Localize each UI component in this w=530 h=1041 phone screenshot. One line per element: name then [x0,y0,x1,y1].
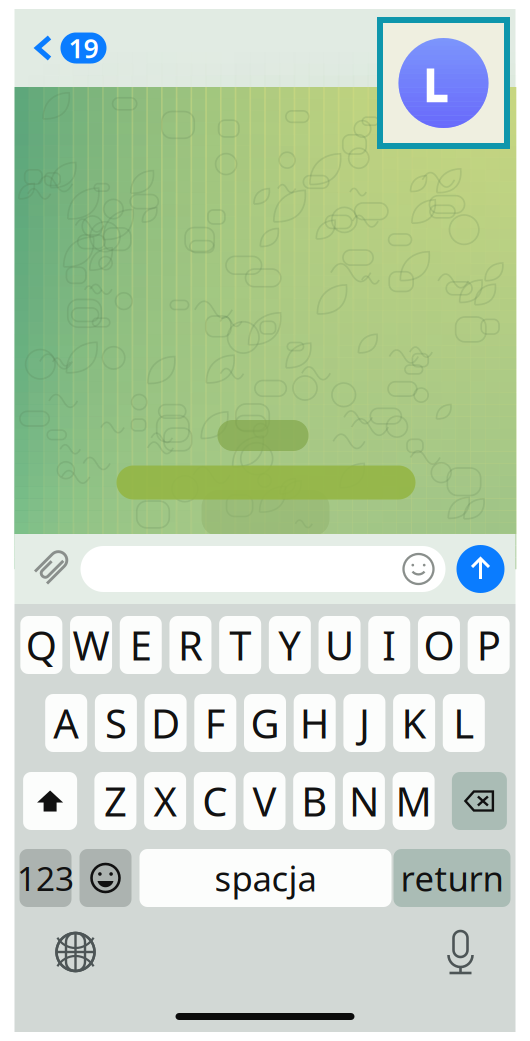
staticText: W [72,618,109,671]
button[interactable]: Z [94,772,136,830]
button[interactable]: L [443,694,485,752]
button[interactable]: D [145,694,187,752]
button[interactable]: C [194,772,236,830]
button[interactable]: T [219,616,261,674]
staticText: return [400,855,503,901]
button[interactable]: A [45,694,87,752]
button[interactable]: U [318,616,360,674]
staticText: A [53,696,79,749]
button[interactable]: X [144,772,186,830]
button[interactable]: J [343,694,385,752]
button[interactable]: Emoji [403,554,445,584]
staticText: C [202,774,227,827]
staticText: I [382,618,396,671]
button[interactable]: Backspace [452,772,507,830]
staticText: V [252,774,276,827]
staticText: J [359,696,370,749]
button[interactable]: H [294,694,336,752]
button[interactable]: Dictation [433,925,515,979]
button[interactable]: 123 [19,849,71,907]
staticText: K [402,696,427,749]
button[interactable]: K [393,694,435,752]
button[interactable]: spacja [139,849,391,907]
button[interactable]: Next keyboard [14,925,106,979]
button[interactable]: Y [269,616,311,674]
button[interactable]: Send [445,545,515,593]
staticText: N [349,774,379,827]
button[interactable]: Shift [23,772,77,830]
staticText: U [325,618,354,671]
staticText: T [229,618,251,671]
staticText: S [105,696,127,749]
staticText: B [301,774,327,827]
button[interactable]: B [293,772,335,830]
button[interactable]: S [95,694,137,752]
button[interactable]: Attach [14,534,80,604]
staticText: G [250,696,279,749]
staticText: Z [104,774,127,827]
button[interactable]: M [393,772,435,830]
button[interactable]: return [393,849,510,907]
staticText: D [151,696,180,749]
button[interactable]: Emoji [79,849,131,907]
button[interactable]: N [343,772,385,830]
staticText: R [178,618,203,671]
staticText: X [154,774,177,827]
staticText: spacja [214,855,316,901]
staticText: 19 [68,30,98,66]
staticText: H [300,696,330,749]
button[interactable]: Q [20,616,62,674]
button[interactable]: O [418,616,460,674]
staticText: Q [26,618,57,671]
button[interactable]: R [169,616,211,674]
staticText: Y [278,618,301,671]
button[interactable]: E [120,616,162,674]
staticText: E [130,618,152,671]
staticText: 123 [17,856,74,900]
button[interactable]: 19 [14,9,118,87]
button[interactable]: P [468,616,510,674]
staticText: L [453,696,474,749]
button[interactable]: Profile photo [398,38,488,128]
staticText: P [477,618,501,671]
button[interactable]: F [194,694,236,752]
button[interactable]: V [243,772,285,830]
staticText: O [423,618,454,671]
button[interactable]: G [244,694,286,752]
button[interactable]: I [368,616,410,674]
staticText: F [205,696,226,749]
staticText: M [396,774,432,827]
button[interactable]: W [70,616,112,674]
